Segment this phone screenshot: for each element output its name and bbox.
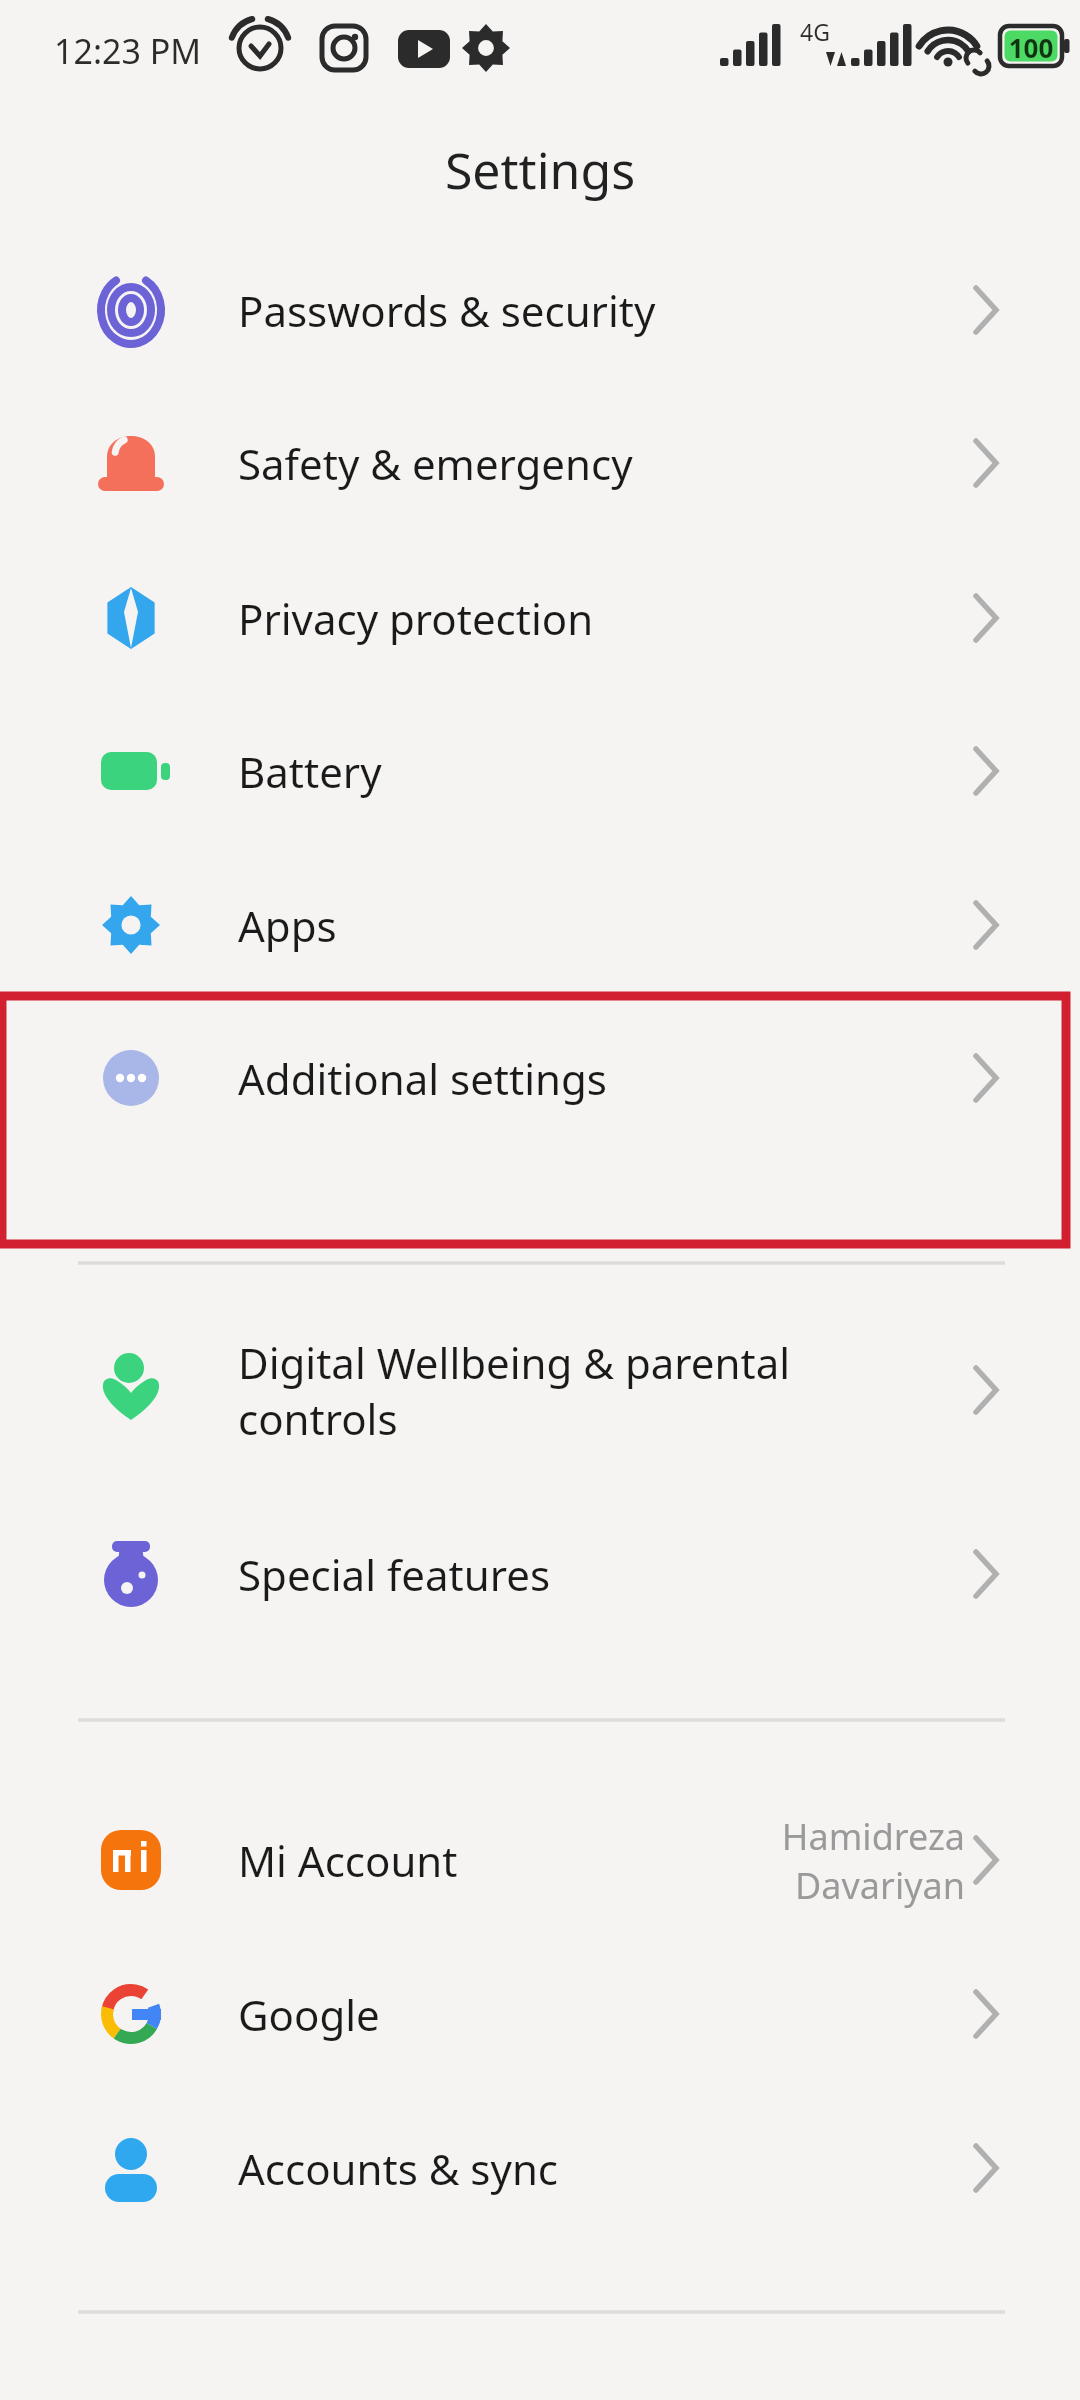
button[interactable]: Open Google xyxy=(950,1974,1030,2054)
staticText: Additional settings xyxy=(238,1050,798,1107)
button[interactable]: Additional settings xyxy=(0,1008,1080,1148)
button[interactable]: Apps xyxy=(0,855,1080,995)
staticText: Settings xyxy=(0,136,1080,204)
button[interactable]: Privacy protection xyxy=(0,548,1080,688)
button[interactable]: Open Apps xyxy=(950,885,1030,965)
staticText: Accounts & sync xyxy=(238,2140,798,2197)
button[interactable]: Open Battery xyxy=(950,731,1030,811)
button[interactable]: Open Additional settings xyxy=(950,1038,1030,1118)
button[interactable]: Mi Account xyxy=(0,1785,1080,1935)
staticText: Safety & emergency xyxy=(238,435,798,492)
button[interactable]: Special features xyxy=(0,1504,1080,1644)
button[interactable]: Open Special features xyxy=(950,1534,1030,1614)
button[interactable]: Safety & emergency xyxy=(0,393,1080,533)
staticText: Passwords & security xyxy=(238,282,798,339)
staticText: Hamidreza Davariyan xyxy=(545,1812,965,1909)
staticText: Battery xyxy=(238,743,798,800)
button[interactable]: Digital Wellbeing & parental controls xyxy=(0,1315,1080,1465)
button[interactable]: Open Privacy protection xyxy=(950,578,1030,658)
staticText: 4G xyxy=(800,16,830,47)
staticText: Privacy protection xyxy=(238,590,798,647)
staticText: Apps xyxy=(238,897,798,954)
button[interactable]: Passwords & security xyxy=(0,240,1080,380)
staticText: Digital Wellbeing & parental controls xyxy=(238,1334,798,1447)
staticText: Special features xyxy=(238,1546,798,1603)
button[interactable]: Open Accounts & sync xyxy=(950,2128,1030,2208)
button[interactable]: Accounts & sync xyxy=(0,2098,1080,2238)
staticText: 12:23 PM xyxy=(54,28,202,74)
button[interactable]: Open Safety & emergency xyxy=(950,423,1030,503)
button[interactable]: Open Digital Wellbeing & parental contro… xyxy=(950,1350,1030,1430)
staticText: Mi Account xyxy=(238,1832,798,1889)
button[interactable]: Battery xyxy=(0,701,1080,841)
staticText: Google xyxy=(238,1986,798,2043)
staticText: 100 xyxy=(1006,30,1056,65)
button[interactable]: Open Passwords & security xyxy=(950,270,1030,350)
button[interactable]: Open Mi Account xyxy=(950,1820,1030,1900)
button[interactable]: Google xyxy=(0,1944,1080,2084)
